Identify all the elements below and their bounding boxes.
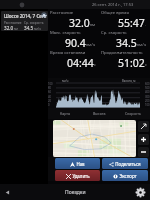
staticText: Расстояние bbox=[50, 10, 74, 16]
staticText: км/ч bbox=[86, 42, 96, 47]
staticText: Ср. скорость bbox=[101, 30, 127, 36]
staticText: Высота, м bbox=[122, 79, 136, 83]
staticText: с bbox=[145, 62, 147, 67]
button[interactable]: Поделиться bbox=[102, 158, 148, 169]
staticText: Поездки bbox=[65, 189, 86, 196]
staticText: 04:44 bbox=[67, 56, 94, 69]
staticText: 32.0 bbox=[4, 25, 14, 31]
staticText: 100 bbox=[48, 82, 53, 86]
staticText: 400 bbox=[145, 90, 150, 94]
button[interactable]: Скорость bbox=[116, 108, 150, 119]
staticText: 20 bbox=[48, 99, 51, 103]
staticText: Общее время bbox=[101, 10, 129, 16]
staticText: Продолжительность bbox=[101, 50, 143, 56]
staticText: Удалить bbox=[72, 173, 90, 179]
staticText: . bbox=[145, 22, 147, 27]
staticText: 200 bbox=[145, 99, 150, 103]
staticText: 60 bbox=[48, 90, 51, 94]
staticText: км/ч bbox=[137, 42, 147, 47]
button[interactable]: Map bbox=[53, 120, 136, 157]
staticText: Время остановки bbox=[50, 50, 86, 56]
staticText: км bbox=[14, 27, 18, 31]
staticText: 80 bbox=[48, 86, 51, 90]
button[interactable]: Высота bbox=[82, 108, 116, 119]
staticText: 26 сент. 2014 г., 17:53 bbox=[92, 2, 134, 7]
staticText: 100 bbox=[145, 103, 150, 107]
staticText: Макс. скорость bbox=[50, 30, 81, 36]
staticText: 600 bbox=[145, 82, 150, 86]
staticText: 51:02 bbox=[118, 56, 145, 69]
staticText: Скорость bbox=[125, 111, 141, 116]
staticText: 300 bbox=[145, 95, 150, 99]
button[interactable]: Zoom in bbox=[138, 134, 149, 145]
button[interactable]: Back bbox=[3, 188, 12, 197]
button[interactable]: Шоссе 2014, 7 Сент bbox=[1, 11, 48, 31]
staticText: 32.0 bbox=[69, 16, 90, 29]
staticText: Ср. скорость bbox=[24, 21, 44, 25]
staticText: Экспорт bbox=[119, 173, 137, 179]
button[interactable]: Экспорт bbox=[102, 170, 148, 181]
staticText: 34.5 bbox=[24, 25, 34, 31]
staticText: 34.5 bbox=[116, 36, 137, 49]
button[interactable]: Zoom out bbox=[138, 147, 149, 157]
button[interactable]: Карта bbox=[48, 108, 82, 119]
staticText: км bbox=[90, 22, 96, 27]
staticText: 55:47 bbox=[118, 16, 145, 29]
staticText: 90.4 bbox=[65, 36, 86, 49]
staticText: 0 bbox=[48, 103, 50, 107]
staticText: с bbox=[94, 62, 96, 67]
button[interactable]: Settings bbox=[136, 188, 145, 197]
staticText: Шоссе 2014, 7 Сент bbox=[4, 13, 47, 19]
staticText: км/ч bbox=[34, 27, 41, 31]
staticText: Расстояние bbox=[4, 21, 22, 25]
button[interactable]: Удалить bbox=[55, 170, 100, 181]
staticText: 500 bbox=[145, 86, 150, 90]
button[interactable]: Fullscreen bbox=[138, 121, 149, 132]
button[interactable]: Нав bbox=[55, 158, 100, 169]
staticText: Карта bbox=[60, 111, 71, 116]
staticText: Поделиться bbox=[115, 161, 141, 167]
staticText: 40 bbox=[48, 95, 51, 99]
staticText: км/ч bbox=[62, 79, 69, 83]
staticText: Высота bbox=[93, 111, 106, 116]
staticText: Нав bbox=[76, 161, 85, 167]
